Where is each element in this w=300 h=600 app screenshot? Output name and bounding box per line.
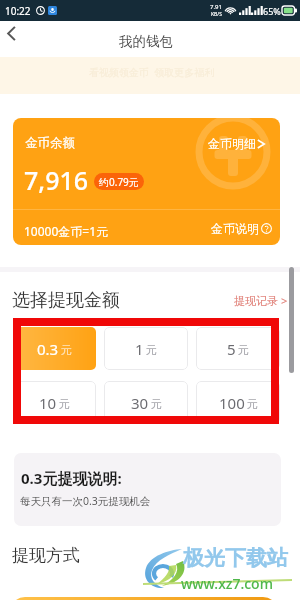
staticText: 金币明细 bbox=[208, 136, 256, 151]
button[interactable]: Withdraw bbox=[10, 597, 278, 600]
staticText: 65% bbox=[263, 5, 281, 17]
staticText: 5 bbox=[227, 339, 236, 359]
staticText: 0.3元提现说明: bbox=[21, 468, 122, 488]
staticText: 元 bbox=[247, 397, 258, 411]
button[interactable]: 100 bbox=[196, 381, 280, 424]
staticText: 0.3 bbox=[37, 339, 59, 359]
button[interactable]: 金币明细 bbox=[208, 136, 266, 151]
staticText: 元 bbox=[151, 397, 162, 411]
button[interactable]: 1 bbox=[104, 327, 188, 370]
staticText: 金币余额 bbox=[25, 135, 75, 151]
staticText: 元 bbox=[238, 343, 249, 357]
button[interactable]: 金币余额 bbox=[13, 118, 280, 245]
button[interactable]: 提现记录 bbox=[234, 293, 288, 308]
staticText: 每天只有一次0.3元提现机会 bbox=[20, 494, 151, 508]
staticText: 提现方式 bbox=[12, 545, 80, 566]
staticText: 10 bbox=[39, 393, 57, 413]
button[interactable]: 金币说明 bbox=[211, 221, 272, 236]
staticText: 10000金币=1元 bbox=[24, 223, 109, 239]
button[interactable]: 5 bbox=[196, 327, 280, 370]
staticText: 10:22 bbox=[5, 4, 31, 18]
staticText: 提现记录 bbox=[234, 294, 278, 308]
staticText: KB/S bbox=[211, 11, 222, 18]
staticText: > bbox=[281, 293, 288, 308]
staticText: 选择提现金额 bbox=[12, 289, 120, 312]
button[interactable]: 10 bbox=[13, 381, 96, 424]
staticText: www.xz7.com bbox=[181, 574, 273, 593]
staticText: 100 bbox=[219, 393, 245, 413]
staticText: 看视频领金币 领取更多福利 bbox=[89, 65, 215, 79]
staticText: 1 bbox=[135, 339, 144, 359]
staticText: 约0.79元 bbox=[99, 175, 139, 189]
staticText: 元 bbox=[61, 343, 72, 357]
staticText: 极光下载站 bbox=[183, 545, 288, 571]
staticText: 7,916 bbox=[24, 163, 89, 197]
staticText: 金币说明 bbox=[211, 221, 259, 236]
staticText: 30 bbox=[131, 393, 149, 413]
staticText: 7.91 bbox=[210, 3, 222, 11]
button[interactable]: Back bbox=[0, 22, 23, 45]
button[interactable]: 30 bbox=[104, 381, 188, 424]
staticText: 元 bbox=[59, 397, 70, 411]
button[interactable]: 0.3 bbox=[13, 327, 96, 370]
staticText: 我的钱包 bbox=[119, 33, 173, 50]
staticText: 元 bbox=[146, 343, 157, 357]
